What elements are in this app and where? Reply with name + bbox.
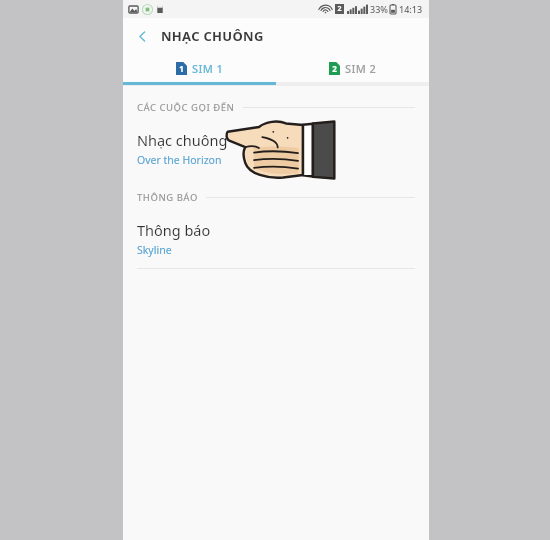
staticText: 1 [179,63,184,74]
staticText: SIM 2 [345,61,377,76]
staticText: 2 [337,4,342,14]
staticText: NHẠC CHUÔNG [161,27,264,45]
button[interactable]: Back [129,23,155,49]
button[interactable]: 1 [123,54,276,82]
button[interactable]: 2 [276,54,429,82]
staticText: Thông báo [137,220,211,240]
staticText: Skyline [137,243,172,257]
staticText: THÔNG BÁO [137,191,198,204]
button[interactable]: Thông báo [123,209,429,269]
staticText: CÁC CUỘC GỌI ĐẾN [137,101,235,114]
staticText: Over the Horizon [137,153,222,167]
staticText: 2 [332,63,337,74]
staticText: Nhạc chuông [137,130,228,150]
staticText: 33% [370,3,388,15]
staticText: SIM 1 [192,61,224,76]
button[interactable]: Nhạc chuông [123,119,429,178]
staticText: 14:13 [399,3,423,15]
